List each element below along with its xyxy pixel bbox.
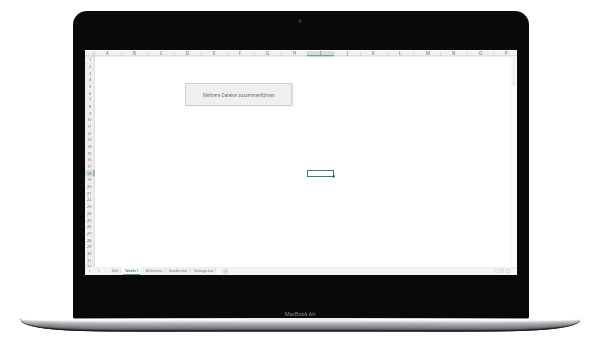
staticText: 9 [89, 111, 92, 116]
staticText: G [266, 50, 270, 56]
staticText: 13 [87, 137, 92, 142]
staticText: Artikel.xlsx [146, 269, 163, 273]
staticText: 14 [87, 144, 92, 149]
staticText: J [347, 50, 349, 56]
staticText: 7 [89, 97, 92, 102]
button[interactable]: Artikel.xlsx [142, 267, 166, 275]
staticText: 20 [87, 184, 92, 189]
staticText: MacBook Air [285, 310, 316, 317]
button[interactable]: Verträge.xlsx [191, 267, 216, 275]
staticText: 10 [87, 117, 92, 122]
staticText: Verträge.xlsx [194, 269, 214, 273]
staticText: K [372, 50, 375, 56]
staticText: B [133, 50, 136, 56]
button[interactable]: Add sheet [223, 269, 228, 274]
button[interactable] [307, 170, 334, 177]
staticText: Mehrere Dateien zusammenführen [203, 92, 275, 98]
staticText: N [452, 50, 456, 56]
staticText: P [505, 50, 508, 56]
button[interactable]: Info [110, 267, 121, 275]
button[interactable]: Tabelle1 [121, 267, 142, 275]
staticText: C [160, 50, 163, 56]
staticText: 4 [89, 77, 92, 82]
staticText: M [426, 50, 430, 56]
staticText: I [320, 50, 322, 56]
staticText: 6 [89, 91, 92, 96]
staticText: 8 [89, 104, 92, 109]
button[interactable]: Mehrere Dateien zusammenführen [185, 83, 292, 106]
staticText: 22 [87, 197, 92, 202]
staticText: 5 [89, 84, 92, 89]
staticText: 12 [87, 131, 92, 136]
button[interactable]: Kunden.xlsx [166, 267, 191, 275]
staticText: 26 [87, 224, 92, 229]
staticText: 2 [89, 64, 92, 69]
staticText: L [399, 50, 402, 56]
staticText: D [186, 50, 190, 56]
staticText: 25 [87, 218, 92, 223]
staticText: 17 [87, 164, 92, 169]
staticText: 27 [87, 231, 92, 236]
staticText: 1 [89, 57, 92, 62]
staticText: 23 [87, 204, 92, 209]
staticText: 30 [87, 251, 92, 256]
staticText: 29 [87, 244, 92, 249]
staticText: E [213, 50, 216, 56]
staticText: 18 [87, 171, 92, 176]
staticText: 15 [87, 151, 92, 156]
staticText: Kunden.xlsx [169, 269, 188, 273]
staticText: 21 [87, 191, 92, 196]
staticText: 11 [87, 124, 92, 129]
staticText: Info [112, 269, 119, 273]
staticText: F [239, 50, 242, 56]
staticText: 31 [87, 258, 92, 263]
staticText: 32 [87, 264, 92, 269]
staticText: Tabelle1 [125, 269, 139, 273]
staticText: 16 [87, 157, 92, 162]
staticText: A [106, 50, 109, 56]
staticText: O [479, 50, 483, 56]
staticText: 3 [89, 71, 92, 76]
staticText: 24 [87, 211, 92, 216]
staticText: 19 [87, 177, 92, 182]
staticText: 28 [87, 238, 92, 243]
staticText: H [293, 50, 297, 56]
